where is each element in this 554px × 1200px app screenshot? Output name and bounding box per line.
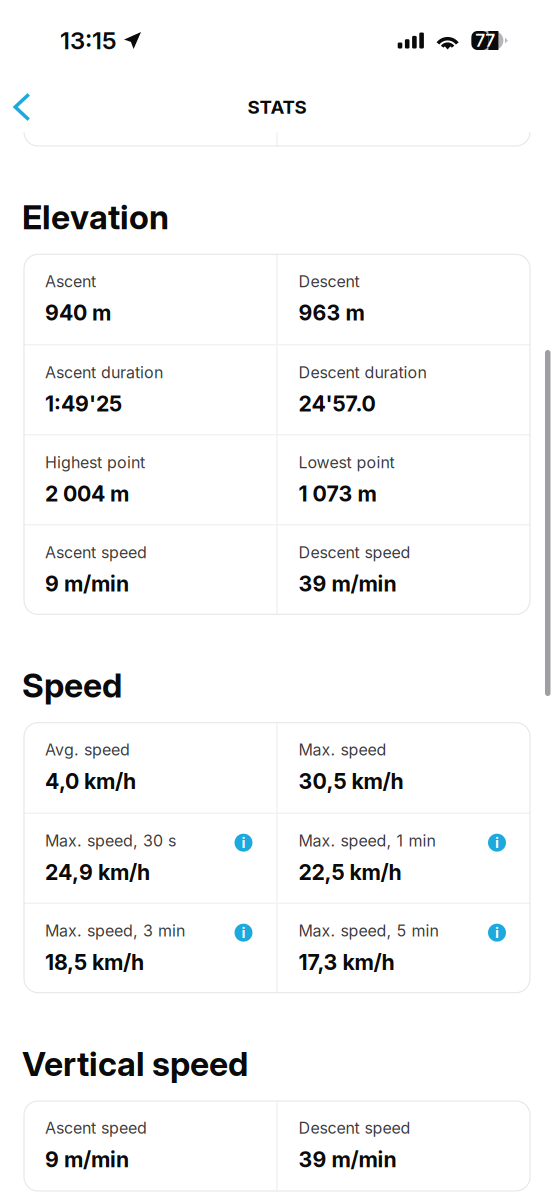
staticText: i xyxy=(495,834,499,851)
staticText: Max. speed, 1 min xyxy=(298,831,435,850)
staticText: STATS xyxy=(247,96,306,118)
staticText: 39 m/min xyxy=(298,571,396,597)
staticText: Avg. speed xyxy=(45,740,130,759)
staticText: Descent speed xyxy=(298,1118,410,1138)
staticText: Descent xyxy=(298,272,359,291)
staticText: Ascent duration xyxy=(45,363,163,382)
staticText: Elevation xyxy=(22,197,169,237)
staticText: 39 m/min xyxy=(298,1147,396,1172)
staticText: 940 m xyxy=(45,300,111,326)
staticText: 30,5 km/h xyxy=(298,768,403,794)
staticText: Max. speed, 30 s xyxy=(45,831,176,850)
staticText: 2 004 m xyxy=(45,481,129,507)
staticText: 963 m xyxy=(298,300,364,326)
staticText: Descent speed xyxy=(298,543,410,562)
staticText: Max. speed, 3 min xyxy=(45,921,185,940)
staticText: Ascent speed xyxy=(45,1118,147,1138)
staticText: Lowest point xyxy=(298,453,394,472)
staticText: Vertical speed xyxy=(22,1044,248,1084)
staticText: i xyxy=(495,924,499,941)
staticText: 9 m/min xyxy=(45,1147,129,1172)
staticText: 1:49'25 xyxy=(45,391,122,417)
staticText: 24,9 km/h xyxy=(45,859,150,885)
staticText: Ascent xyxy=(45,272,96,291)
staticText: Ascent speed xyxy=(45,543,147,562)
staticText: 77 xyxy=(475,30,495,51)
staticText: i xyxy=(241,834,245,851)
staticText: Max. speed xyxy=(298,740,386,759)
staticText: Max. speed, 5 min xyxy=(298,921,438,940)
staticText: 9 m/min xyxy=(45,571,129,597)
staticText: 13:15 xyxy=(60,26,117,55)
staticText: 17,3 km/h xyxy=(298,949,394,975)
staticText: 4,0 km/h xyxy=(45,768,136,794)
staticText: 18,5 km/h xyxy=(45,949,144,975)
staticText: 24'57.0 xyxy=(298,391,375,417)
button[interactable]: Back xyxy=(0,78,49,129)
staticText: Descent duration xyxy=(298,363,426,382)
staticText: 1 073 m xyxy=(298,481,376,507)
staticText: 22,5 km/h xyxy=(298,859,401,885)
staticText: i xyxy=(241,924,245,941)
staticText: Highest point xyxy=(45,453,145,472)
staticText: Speed xyxy=(22,665,122,706)
